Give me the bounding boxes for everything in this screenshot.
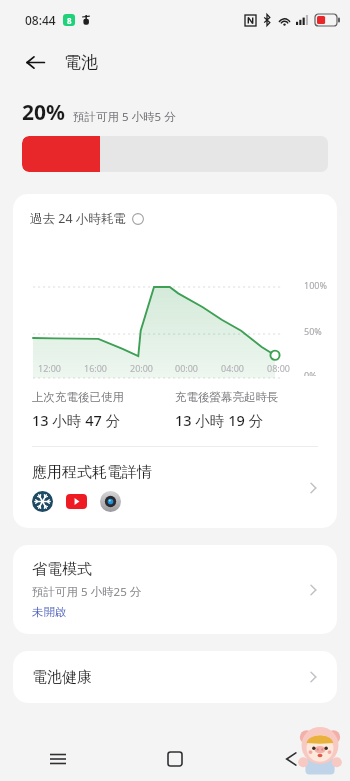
staticText: 8	[67, 15, 72, 26]
staticText: 電池	[64, 52, 98, 73]
button[interactable]: 電池健康	[13, 651, 337, 703]
staticText: 應用程式耗電詳情	[32, 463, 152, 482]
staticText: 20%	[22, 98, 65, 127]
staticText: 預計可用 5 小時25 分	[32, 584, 142, 600]
staticText: 04:00	[221, 362, 245, 374]
button[interactable]: Back	[233, 737, 350, 781]
staticText: 未開啟	[32, 605, 67, 619]
staticText: 16:00	[84, 362, 108, 374]
staticText: 省電模式	[32, 560, 92, 579]
staticText: 電池健康	[32, 668, 303, 687]
staticText: 12:00	[38, 362, 62, 374]
other: Open	[303, 580, 323, 600]
staticText: 13 小時 47 分	[32, 410, 120, 430]
staticText: 08:00	[267, 362, 291, 374]
staticText: 過去 24 小時耗電	[30, 210, 126, 227]
button[interactable]: Back	[18, 45, 52, 79]
staticText: 20:00	[130, 362, 154, 374]
other: Open	[303, 667, 323, 687]
button[interactable]: Help	[132, 213, 144, 225]
staticText: 08:44	[25, 12, 56, 28]
button[interactable]: Recents	[0, 737, 116, 781]
staticText: 100%	[304, 279, 327, 291]
button[interactable]: 省電模式	[13, 545, 337, 634]
staticText: 充電後螢幕亮起時長	[175, 390, 279, 404]
staticText: 預計可用 5 小時5 分	[73, 109, 176, 125]
staticText: 上次充電後已使用	[32, 390, 124, 404]
staticText: 0%	[304, 369, 317, 376]
staticText: 13 小時 19 分	[175, 410, 263, 430]
button[interactable]: Home	[116, 737, 233, 781]
other: Open	[303, 478, 323, 498]
button[interactable]: 應用程式耗電詳情	[13, 447, 337, 528]
staticText: 00:00	[175, 362, 199, 374]
staticText: 50%	[304, 325, 322, 337]
